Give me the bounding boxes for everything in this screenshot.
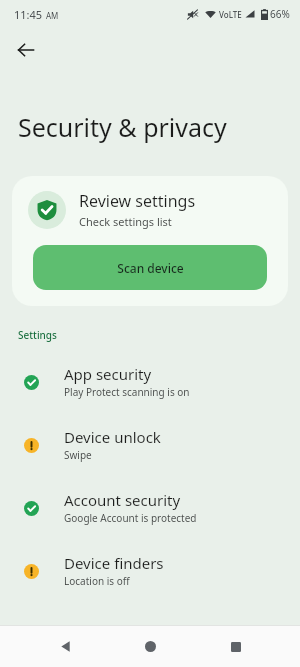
button[interactable]: Device finders bbox=[0, 549, 300, 592]
staticText: Scan device bbox=[117, 260, 184, 276]
staticText: 66% bbox=[270, 7, 290, 21]
button[interactable]: App security bbox=[0, 360, 300, 403]
staticText: Review settings bbox=[79, 190, 196, 212]
staticText: Check settings list bbox=[79, 214, 172, 229]
staticText: App security bbox=[64, 364, 152, 384]
staticText: Device finders bbox=[64, 553, 164, 573]
button[interactable]: Recent apps bbox=[215, 626, 257, 667]
staticText: 11:45 bbox=[14, 7, 43, 22]
button[interactable]: Back bbox=[44, 626, 86, 667]
button[interactable]: Device unlock bbox=[0, 423, 300, 466]
staticText: Location is off bbox=[64, 574, 130, 588]
button[interactable]: Back bbox=[7, 31, 45, 69]
staticText: Account security bbox=[64, 490, 181, 510]
button[interactable]: Home bbox=[129, 626, 171, 667]
staticText: Swipe bbox=[64, 448, 92, 462]
staticText: Play Protect scanning is on bbox=[64, 385, 190, 399]
staticText: Settings bbox=[18, 328, 57, 342]
staticText: Google Account is protected bbox=[64, 511, 197, 525]
staticText: Security & privacy bbox=[18, 110, 227, 144]
staticText: AM bbox=[46, 10, 59, 21]
staticText: Device unlock bbox=[64, 427, 161, 447]
staticText: VoLTE bbox=[219, 9, 242, 20]
button[interactable]: Account security bbox=[0, 486, 300, 529]
button[interactable]: Scan device bbox=[33, 245, 267, 290]
